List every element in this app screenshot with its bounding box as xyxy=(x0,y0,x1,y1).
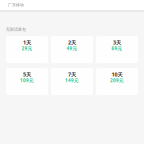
staticText: 109元 xyxy=(20,77,34,84)
staticText: 10天 xyxy=(111,71,122,78)
staticText: 149元 xyxy=(65,77,79,84)
staticText: 49元 xyxy=(66,45,77,52)
staticText: 2天 xyxy=(68,39,76,46)
staticText: 5天 xyxy=(23,71,31,78)
staticText: 69元 xyxy=(111,45,122,52)
button[interactable]: 1天 xyxy=(6,36,48,63)
staticText: 29元 xyxy=(21,45,32,52)
button[interactable]: 5天 xyxy=(6,68,48,95)
staticText: 209元 xyxy=(110,77,124,84)
button[interactable]: 7天 xyxy=(51,68,93,95)
button[interactable]: 3天 xyxy=(96,36,138,63)
staticText: 无限流量包 xyxy=(6,27,26,32)
staticText: 3天 xyxy=(113,39,121,46)
button[interactable]: 2天 xyxy=(51,36,93,63)
staticText: 广东移动 xyxy=(8,2,24,7)
staticText: 1天 xyxy=(23,39,31,46)
staticText: 7天 xyxy=(68,71,76,78)
button[interactable]: 10天 xyxy=(96,68,138,95)
